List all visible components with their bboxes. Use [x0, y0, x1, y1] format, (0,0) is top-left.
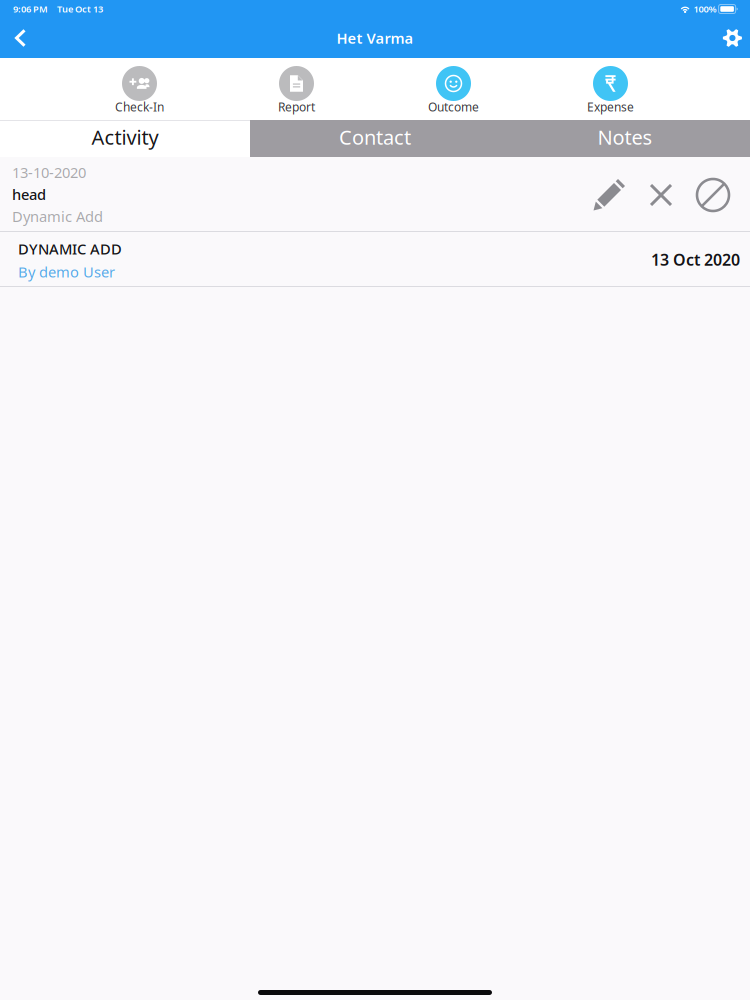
staticText: Expense	[587, 99, 634, 115]
staticText: 13 Oct 2020	[651, 249, 740, 270]
button[interactable]: Activity	[0, 120, 250, 157]
staticText: Contact	[339, 124, 411, 150]
button[interactable]: Edit	[583, 175, 635, 215]
staticText: 9:06 PM	[13, 3, 48, 15]
staticText: Notes	[597, 124, 652, 150]
staticText: Dynamic Add	[12, 206, 103, 226]
button[interactable]: Report	[218, 58, 375, 120]
staticText: Report	[278, 99, 315, 115]
staticText: Outcome	[428, 99, 479, 115]
staticText: 13-10-2020	[12, 162, 86, 182]
button[interactable]: Check-In	[61, 58, 218, 120]
staticText: Activity	[91, 124, 158, 150]
button[interactable]: Cancel	[635, 175, 687, 215]
button[interactable]: Notes	[500, 120, 750, 157]
button[interactable]: Contact	[250, 120, 500, 157]
staticText: DYNAMIC ADD	[18, 239, 122, 258]
button[interactable]: Back	[0, 18, 45, 58]
staticText: head	[12, 184, 46, 204]
button[interactable]: Settings	[712, 18, 750, 58]
button[interactable]: Expense	[532, 58, 689, 120]
staticText: Check-In	[115, 99, 164, 115]
staticText: Tue Oct 13	[57, 3, 103, 15]
button[interactable]: Block	[687, 175, 739, 215]
button[interactable]: Outcome	[375, 58, 532, 120]
staticText: Het Varma	[336, 28, 413, 48]
staticText: 100%	[694, 3, 717, 15]
staticText: By demo User	[18, 262, 115, 281]
